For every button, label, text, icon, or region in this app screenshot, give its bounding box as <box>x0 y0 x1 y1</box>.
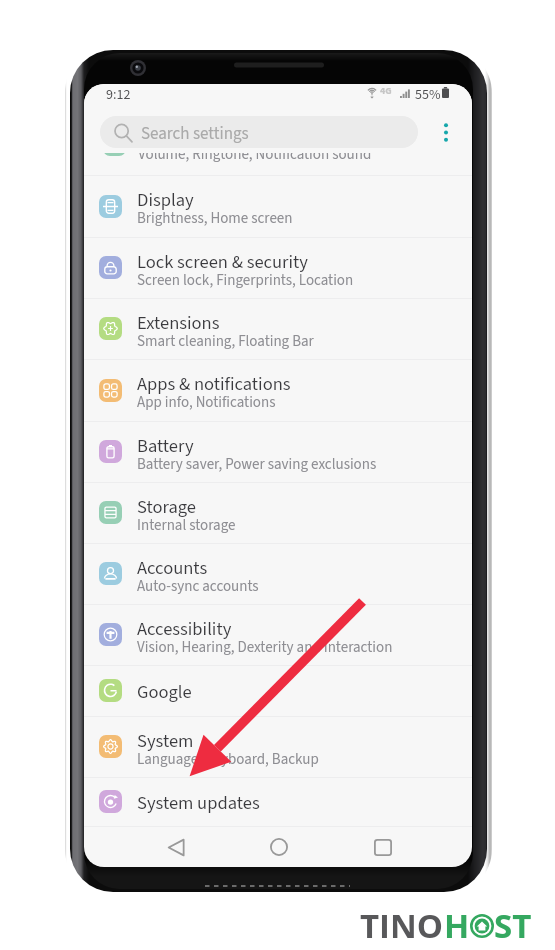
staticText: Google <box>137 679 192 705</box>
button[interactable]: Battery <box>84 421 472 482</box>
button[interactable]: Volume, Ringtone, Notification sound <box>84 150 472 175</box>
staticText: Internal storage <box>137 515 236 536</box>
button[interactable]: More options <box>434 116 458 148</box>
button[interactable]: Back <box>154 825 198 867</box>
staticText: TINO <box>360 903 444 948</box>
staticText: 55% <box>415 85 441 105</box>
staticText: System <box>137 728 194 754</box>
staticText: Battery <box>137 433 194 459</box>
staticText: ST <box>494 903 532 948</box>
staticText: 4G <box>380 84 392 98</box>
staticText: Screen lock, Fingerprints, Location <box>137 270 354 291</box>
staticText: Smart cleaning, Floating Bar <box>137 331 314 352</box>
button[interactable]: Search settings <box>100 116 418 148</box>
button[interactable]: System updates <box>84 777 472 826</box>
staticText: Vision, Hearing, Dexterity and Interacti… <box>137 637 393 658</box>
staticText: App info, Notifications <box>137 392 276 413</box>
staticText: Search settings <box>141 122 249 146</box>
staticText: Lock screen & security <box>137 249 308 275</box>
button[interactable]: Accessibility <box>84 604 472 665</box>
button[interactable]: Recent apps <box>361 825 405 867</box>
staticText: System updates <box>137 790 260 816</box>
staticText: Apps & notifications <box>137 371 291 397</box>
staticText: Brightness, Home screen <box>137 208 293 229</box>
button[interactable]: Display <box>84 175 472 237</box>
button[interactable]: Apps & notifications <box>84 359 472 421</box>
staticText: Language, Keyboard, Backup <box>137 749 319 770</box>
staticText: Extensions <box>137 310 220 336</box>
button[interactable]: Storage <box>84 482 472 543</box>
button[interactable]: Accounts <box>84 543 472 604</box>
button[interactable]: Home <box>257 825 301 867</box>
staticText: Storage <box>137 494 197 520</box>
staticText: H <box>444 903 470 948</box>
staticText: Volume, Ringtone, Notification sound <box>138 150 372 165</box>
staticText: Display <box>137 187 194 213</box>
staticText: 9:12 <box>106 85 131 105</box>
staticText: Auto-sync accounts <box>137 576 259 597</box>
staticText: Accounts <box>137 555 208 581</box>
button[interactable]: Google <box>84 665 472 716</box>
staticText: Battery saver, Power saving exclusions <box>137 454 377 475</box>
button[interactable]: Lock screen & security <box>84 237 472 298</box>
button[interactable]: System <box>84 716 472 777</box>
staticText: Accessibility <box>137 616 232 642</box>
button[interactable]: Extensions <box>84 298 472 359</box>
